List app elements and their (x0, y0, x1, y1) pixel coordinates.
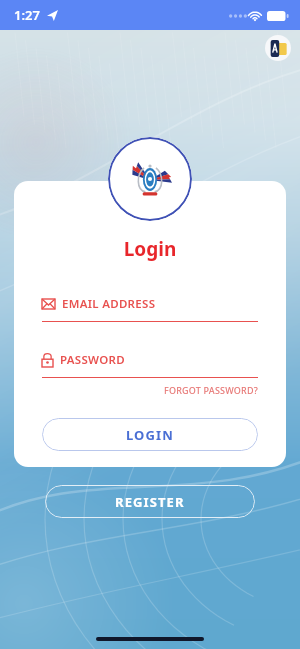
staticText: 1:27 (14, 6, 40, 24)
staticText: FORGOT PASSWORD? (164, 384, 258, 396)
button[interactable]: LOGIN (42, 418, 258, 451)
staticText: REGISTER (115, 493, 185, 511)
staticText: Login (14, 236, 286, 262)
button[interactable]: REGISTER (45, 485, 255, 518)
button[interactable]: App info (265, 35, 291, 61)
button[interactable]: FORGOT PASSWORD? (164, 384, 258, 396)
staticText: LOGIN (126, 426, 174, 444)
staticText: PASSWORD (60, 352, 125, 368)
staticText: EMAIL ADDRESS (62, 296, 156, 312)
